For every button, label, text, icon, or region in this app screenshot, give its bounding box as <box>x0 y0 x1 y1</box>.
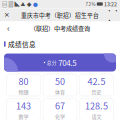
staticText: ••• <box>106 5 120 25</box>
button[interactable]: 42.5 <box>79 74 113 96</box>
staticText: 总分 <box>47 59 57 66</box>
staticText: 143 <box>16 99 31 112</box>
staticText: 重庆市中考（职招）招生平台 <box>21 11 99 19</box>
button[interactable]: 143 <box>6 98 40 120</box>
staticText: 72% <box>86 1 96 7</box>
staticText: ▨ <box>8 0 13 8</box>
staticText: ◣ <box>14 0 19 8</box>
staticText: 体育 <box>55 88 65 95</box>
staticText: ✕ <box>4 11 10 19</box>
staticText: 成绩信息 <box>8 39 36 49</box>
button[interactable]: Close <box>0 8 14 21</box>
staticText: ‹ <box>7 21 10 35</box>
button[interactable]: 50 <box>43 74 77 96</box>
staticText: 50 <box>55 74 65 88</box>
staticText: 数学 <box>18 113 28 120</box>
staticText: 语文 <box>91 113 101 120</box>
staticText: 13:22 <box>104 0 117 8</box>
staticText: 42.5 <box>87 74 105 88</box>
staticText: ▤ <box>2 0 7 8</box>
staticText: 128.5 <box>85 99 108 112</box>
staticText: （联招）中考成绩查询 <box>30 24 90 32</box>
staticText: ● <box>33 0 38 7</box>
button[interactable]: 80 <box>6 74 40 96</box>
staticText: 704.5 <box>58 57 76 68</box>
button[interactable]: 67 <box>43 98 77 120</box>
staticText: ▲ <box>21 0 26 7</box>
staticText: 物理 <box>18 88 28 95</box>
button[interactable]: 128.5 <box>79 98 113 120</box>
staticText: 化学 <box>55 113 65 120</box>
button[interactable]: More options <box>106 8 120 21</box>
staticText: 67 <box>55 99 65 112</box>
button[interactable]: Back <box>0 21 17 34</box>
staticText: 80 <box>18 74 28 88</box>
staticText: 历史 <box>91 88 101 95</box>
staticText: ◆ <box>27 0 32 7</box>
